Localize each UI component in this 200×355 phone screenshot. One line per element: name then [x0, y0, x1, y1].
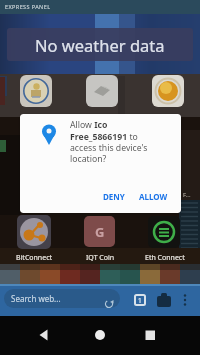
- button[interactable]: [20, 75, 52, 107]
- button[interactable]: 1: [134, 294, 146, 306]
- button[interactable]: [17, 215, 51, 249]
- button[interactable]: [181, 292, 189, 308]
- button[interactable]: [148, 216, 180, 248]
- button[interactable]: G: [84, 216, 115, 247]
- staticText: Search web...: [11, 293, 61, 304]
- button[interactable]: [142, 327, 158, 343]
- staticText: DENY: [103, 191, 125, 202]
- staticText: ALLOW: [139, 191, 168, 202]
- staticText: Eth Connect: [145, 253, 185, 263]
- button[interactable]: [36, 327, 52, 343]
- staticText: F...: [183, 191, 191, 199]
- button[interactable]: No weather data: [7, 28, 193, 61]
- staticText: G: [95, 223, 105, 241]
- button[interactable]: [92, 327, 108, 343]
- button[interactable]: [155, 292, 173, 308]
- button[interactable]: ALLOW: [133, 186, 173, 206]
- staticText: EXPRESS PANEL: [5, 3, 51, 10]
- staticText: 1: [138, 296, 142, 305]
- button[interactable]: DENY: [96, 186, 131, 206]
- staticText: IQT Coin: [86, 253, 115, 263]
- button[interactable]: [152, 75, 184, 107]
- staticText: Allow Ico Free_5866191 to access this de…: [70, 119, 148, 165]
- staticText: BitConnect: [16, 253, 53, 263]
- button[interactable]: [86, 75, 118, 107]
- button[interactable]: Search web...: [4, 289, 120, 308]
- staticText: No weather data: [35, 34, 165, 56]
